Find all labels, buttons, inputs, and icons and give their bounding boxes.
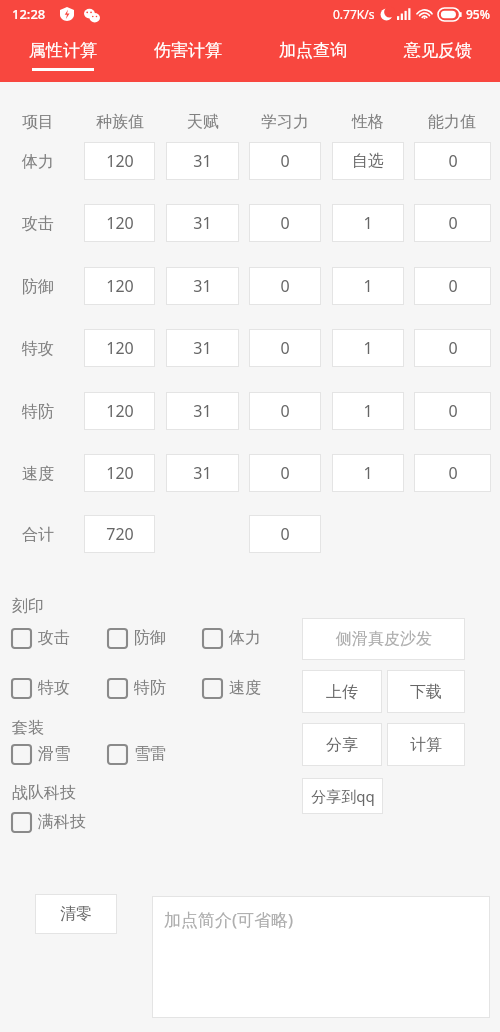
staticText: 体力 [229, 628, 261, 648]
staticText: 31 [193, 275, 212, 297]
staticText: 0 [448, 462, 458, 484]
button[interactable]: 1 [332, 267, 404, 305]
button[interactable]: 0 [414, 454, 491, 492]
staticText: 1 [363, 462, 373, 484]
button[interactable]: 0 [249, 142, 321, 180]
staticText: 体力 [22, 152, 54, 172]
staticText: 分享到qq [311, 786, 375, 806]
button[interactable]: 体力 [203, 628, 261, 648]
button[interactable]: 特攻 [12, 678, 70, 698]
button[interactable]: 滑雪 [12, 744, 70, 764]
staticText: 计算 [410, 735, 442, 755]
button[interactable]: 31 [166, 392, 239, 430]
staticText: 120 [106, 462, 134, 484]
button[interactable]: 0 [414, 267, 491, 305]
button[interactable]: 特防 [108, 678, 166, 698]
button[interactable]: 清零 [35, 894, 117, 934]
staticText: 1 [363, 275, 373, 297]
staticText: 0 [280, 275, 290, 297]
button[interactable]: 雪雷 [108, 744, 166, 764]
staticText: 特防 [22, 402, 54, 422]
button[interactable]: 加点查询 [250, 28, 375, 82]
staticText: 特防 [134, 678, 166, 698]
staticText: 120 [106, 400, 134, 422]
staticText: 0 [280, 400, 290, 422]
staticText: 合计 [22, 525, 54, 545]
button[interactable]: 自选 [332, 142, 404, 180]
staticText: 31 [193, 150, 212, 172]
button[interactable]: 0 [414, 142, 491, 180]
staticText: 下载 [410, 682, 442, 702]
button[interactable]: 0 [414, 204, 491, 242]
staticText: 攻击 [22, 214, 54, 234]
button[interactable]: 伤害计算 [125, 28, 250, 82]
button[interactable]: 下载 [387, 670, 465, 713]
staticText: 套装 [12, 718, 44, 738]
staticText: 清零 [60, 904, 92, 924]
button[interactable]: 1 [332, 454, 404, 492]
button[interactable]: 120 [84, 204, 155, 242]
staticText: 滑雪 [38, 744, 70, 764]
staticText: 能力值 [428, 112, 476, 132]
staticText: 120 [106, 150, 134, 172]
staticText: 防御 [22, 277, 54, 297]
button[interactable]: 0 [249, 454, 321, 492]
staticText: 0 [448, 337, 458, 359]
staticText: 0 [448, 400, 458, 422]
button[interactable]: 速度 [203, 678, 261, 698]
button[interactable]: 720 [84, 515, 155, 553]
staticText: 侧滑真皮沙发 [336, 629, 432, 649]
button[interactable]: 分享 [302, 723, 382, 766]
staticText: 12:28 [12, 5, 46, 23]
staticText: 雪雷 [134, 744, 166, 764]
button[interactable]: 0 [249, 392, 321, 430]
button[interactable]: 加点简介(可省略) [152, 896, 490, 1018]
staticText: 项目 [22, 112, 54, 132]
button[interactable]: 120 [84, 454, 155, 492]
staticText: 速度 [229, 678, 261, 698]
button[interactable]: 属性计算 [0, 28, 125, 82]
button[interactable]: 1 [332, 329, 404, 367]
button[interactable]: 0 [414, 329, 491, 367]
staticText: 0 [280, 462, 290, 484]
button[interactable]: 攻击 [12, 628, 70, 648]
staticText: 120 [106, 275, 134, 297]
button[interactable]: 意见反馈 [375, 28, 500, 82]
staticText: 意见反馈 [404, 40, 472, 61]
button[interactable]: 计算 [387, 723, 465, 766]
button[interactable]: 0 [249, 515, 321, 553]
staticText: 0 [280, 337, 290, 359]
button[interactable]: 侧滑真皮沙发 [302, 618, 465, 660]
button[interactable]: 1 [332, 392, 404, 430]
button[interactable]: 31 [166, 454, 239, 492]
button[interactable]: 31 [166, 142, 239, 180]
button[interactable]: 上传 [302, 670, 382, 713]
staticText: 31 [193, 337, 212, 359]
button[interactable]: 120 [84, 267, 155, 305]
button[interactable]: 31 [166, 267, 239, 305]
button[interactable]: 120 [84, 392, 155, 430]
staticText: 刻印 [12, 596, 44, 616]
button[interactable]: 0 [414, 392, 491, 430]
staticText: 0 [280, 150, 290, 172]
staticText: 0 [448, 150, 458, 172]
button[interactable]: 31 [166, 329, 239, 367]
staticText: 1 [363, 400, 373, 422]
button[interactable]: 120 [84, 329, 155, 367]
button[interactable]: 0 [249, 329, 321, 367]
staticText: 分享 [326, 735, 358, 755]
button[interactable]: 120 [84, 142, 155, 180]
staticText: 天赋 [187, 112, 219, 132]
staticText: 0 [280, 523, 290, 545]
button[interactable]: 1 [332, 204, 404, 242]
button[interactable]: 分享到qq [302, 778, 383, 814]
staticText: 上传 [326, 682, 358, 702]
button[interactable]: 满科技 [12, 812, 86, 832]
staticText: 95% [466, 6, 490, 22]
button[interactable]: 31 [166, 204, 239, 242]
staticText: 0.77K/s [333, 6, 375, 22]
button[interactable]: 防御 [108, 628, 166, 648]
staticText: 120 [106, 212, 134, 234]
button[interactable]: 0 [249, 204, 321, 242]
button[interactable]: 0 [249, 267, 321, 305]
